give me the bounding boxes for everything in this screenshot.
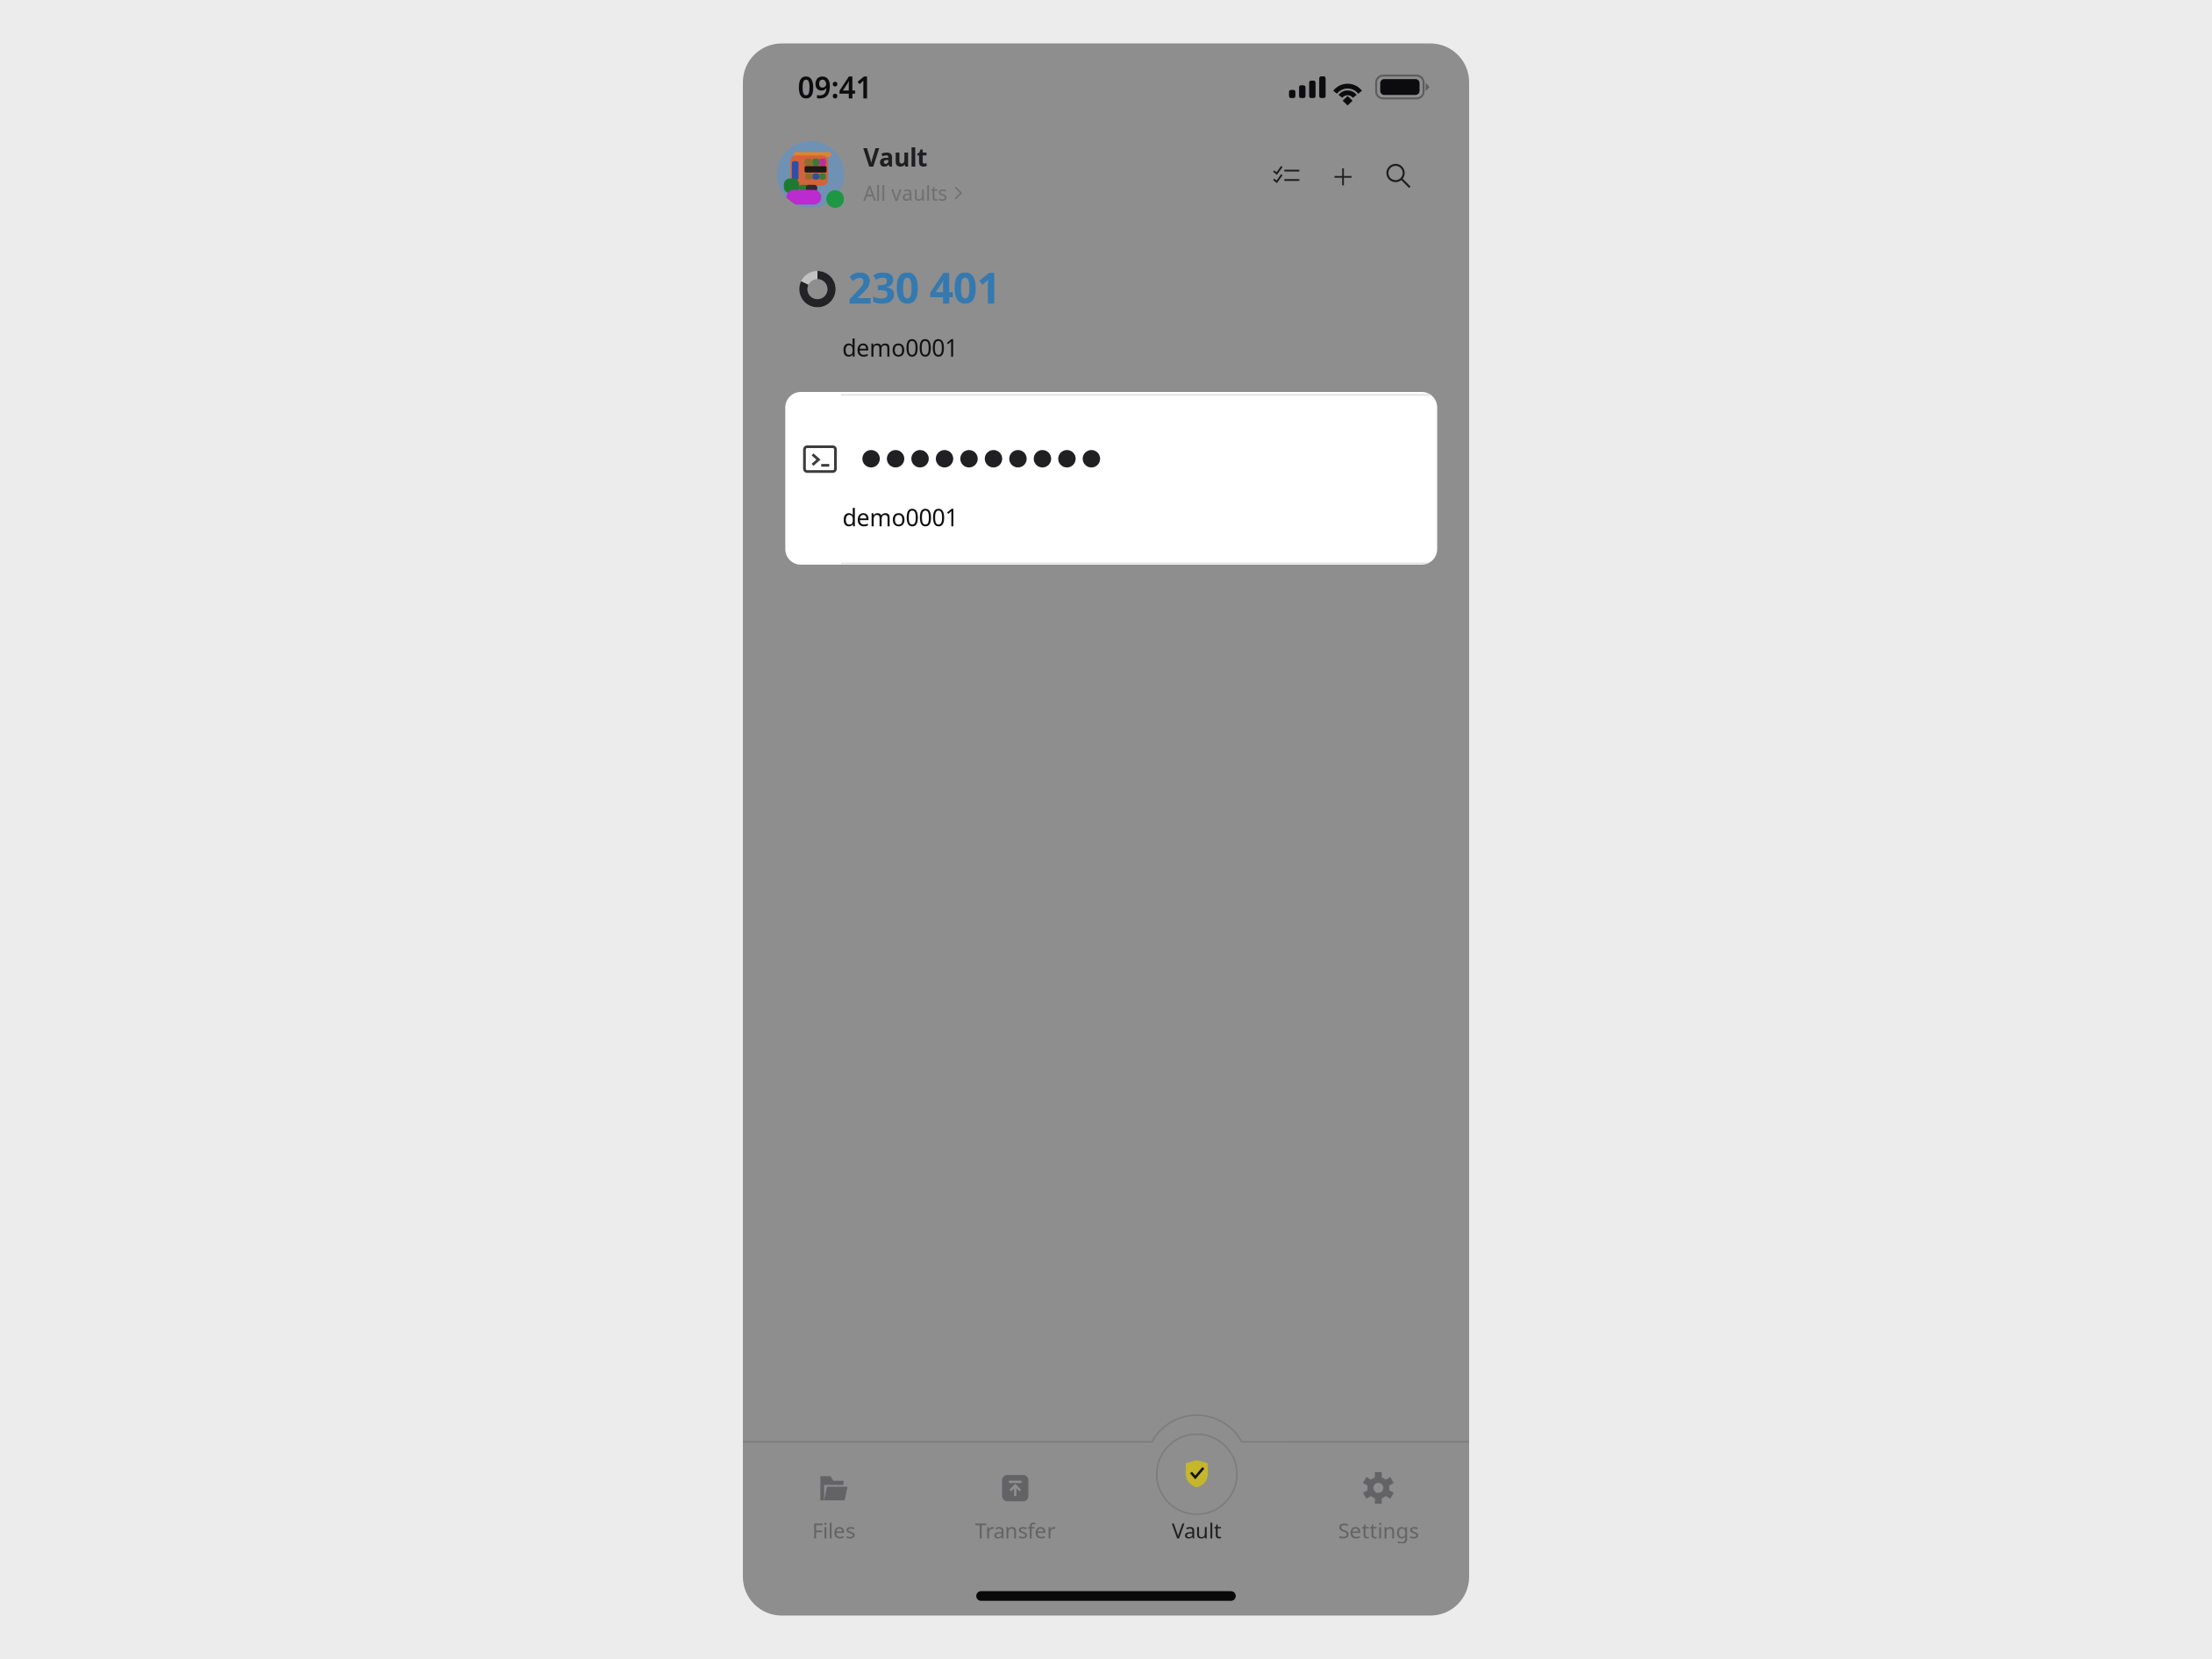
staticText: 09:41: [798, 68, 872, 107]
staticText: demo0001: [842, 502, 958, 533]
staticText: Vault: [863, 141, 927, 173]
button[interactable]: demo0001: [785, 392, 1437, 565]
staticText: Transfer: [975, 1516, 1056, 1544]
staticText: Settings: [1338, 1516, 1419, 1544]
staticText: demo0001: [842, 332, 958, 363]
button[interactable]: Settings: [1288, 1441, 1469, 1558]
button[interactable]: Transfer: [924, 1441, 1106, 1558]
staticText: Vault: [1172, 1516, 1222, 1544]
staticText: 230 401: [848, 259, 1000, 315]
button[interactable]: Vault: [1106, 1441, 1288, 1558]
button[interactable]: Select: [1265, 154, 1308, 196]
button[interactable]: Add item: [1322, 156, 1364, 198]
button[interactable]: Vault: [777, 141, 962, 208]
staticText: Files: [812, 1516, 855, 1544]
button[interactable]: Search: [1377, 155, 1420, 197]
staticText: All vaults: [863, 180, 948, 206]
button[interactable]: Files: [743, 1441, 924, 1558]
